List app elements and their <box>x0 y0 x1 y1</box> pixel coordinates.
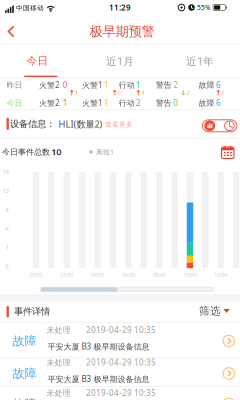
staticText: 设备信息： <box>10 118 55 130</box>
button[interactable] <box>202 120 237 132</box>
button[interactable]: 筛选 <box>197 303 233 319</box>
staticText: 2 <box>136 98 141 108</box>
staticText: 2 <box>186 89 189 96</box>
staticText: 故障 <box>198 80 214 90</box>
staticText: 极早期预警 <box>89 23 154 40</box>
staticText: 查看更多 <box>105 120 133 129</box>
staticText: 中国移动 <box>16 4 44 12</box>
staticText: 00:00 <box>29 271 42 278</box>
staticText: 9 <box>5 206 8 214</box>
staticText: 事件详情 <box>14 306 50 317</box>
staticText: 1 <box>104 98 109 108</box>
button[interactable]: 今日 <box>0 45 77 76</box>
staticText: 2019-04-29 10:35 <box>86 357 156 368</box>
staticText: 火警2 <box>39 80 60 90</box>
staticText: 平安大厦 B3 极早期设备信息 <box>47 341 149 352</box>
staticText: 昨日 <box>6 80 22 90</box>
button[interactable] <box>7 25 15 38</box>
staticText: 2019-04-29 10:35 <box>86 325 156 335</box>
button[interactable]: 近1年 <box>160 45 240 76</box>
staticText: 警告 <box>156 80 172 90</box>
staticText: 12 <box>3 187 9 195</box>
staticText: 筛选 <box>199 304 221 317</box>
staticText: 0 <box>5 263 8 270</box>
staticText: 55% <box>197 3 211 12</box>
staticText: 平安大厦 B3 极早期设备信息 <box>47 374 149 384</box>
staticText: 0 <box>221 89 224 96</box>
staticText: 今日事件总数： <box>2 147 58 157</box>
staticText: 08:00 <box>153 271 166 278</box>
staticText: 10:00 <box>183 271 196 278</box>
button[interactable]: 近1月 <box>80 45 160 76</box>
staticText: 火警1 <box>82 98 103 108</box>
staticText: 行动 <box>119 80 135 90</box>
staticText: HLI(数量2) <box>58 118 102 130</box>
staticText: 2019-04-29 10:35 <box>86 388 156 398</box>
staticText: 06:00 <box>122 271 135 278</box>
staticText: 1 <box>141 89 144 96</box>
staticText: 行动 <box>119 98 135 108</box>
button[interactable] <box>221 145 234 159</box>
button[interactable]: 故障 <box>0 387 240 400</box>
staticText: 2 <box>173 80 178 90</box>
staticText: 6 <box>216 98 221 108</box>
staticText: 火警2 <box>39 98 60 108</box>
staticText: 故障 <box>198 98 214 108</box>
staticText: 警告 <box>156 98 172 108</box>
staticText: 故障 <box>13 397 37 400</box>
button[interactable]: 故障 <box>0 324 240 354</box>
staticText: 10 <box>51 145 61 158</box>
staticText: 故障 <box>13 366 37 381</box>
staticText: 6 <box>216 80 221 90</box>
staticText: 02:00 <box>60 271 73 278</box>
staticText: 15 <box>3 168 9 176</box>
button[interactable]: 查看更多 <box>105 120 133 129</box>
staticText: 近1年 <box>186 54 214 68</box>
staticText: 11:29 <box>109 2 131 13</box>
staticText: 0 <box>63 80 68 90</box>
staticText: 今日 <box>6 98 22 108</box>
staticText: 1 <box>136 80 141 90</box>
staticText: 近1月 <box>106 54 134 68</box>
staticText: 1 <box>75 89 78 96</box>
staticText: 未处理 <box>46 388 70 398</box>
staticText: 3 <box>5 244 8 251</box>
staticText: 离线1 <box>96 148 114 156</box>
staticText: 1 <box>104 80 109 90</box>
button[interactable]: 故障 <box>0 356 240 386</box>
staticText: 04:00 <box>91 271 104 278</box>
staticText: 未处理 <box>46 325 70 335</box>
staticText: 1 <box>63 98 68 108</box>
staticText: 0 <box>118 89 121 96</box>
staticText: 未处理 <box>46 358 70 367</box>
staticText: 今日 <box>26 54 48 67</box>
staticText: 火警1 <box>82 80 103 90</box>
staticText: 0 <box>173 98 178 108</box>
staticText: 12:00 <box>214 271 227 278</box>
staticText: 6 <box>5 225 8 232</box>
staticText: 故障 <box>13 334 37 348</box>
